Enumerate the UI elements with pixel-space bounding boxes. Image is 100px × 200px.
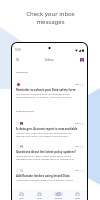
staticText: Mail [19,197,24,200]
staticText: Reminder to submit your Data safety form [16,88,76,92]
other: Select [16,145,19,148]
button[interactable]: Select [12,145,87,160]
button[interactable]: Sep 7 [12,83,87,98]
staticText: Watch our Policy Bytes video series abou… [16,154,72,157]
staticText: Application licensing allows you to add … [16,178,73,181]
staticText: 9:30 [15,48,21,52]
staticText: Data safety form. As a result, users see… [16,95,73,98]
staticText: Is data-gen. Account report is now avail… [16,127,78,131]
button[interactable]: Account [80,58,84,62]
staticText: Inbox [45,58,54,62]
staticText: Questions about the latest policy update… [16,150,76,154]
staticText: Everything else [16,109,34,112]
staticText: Sep 4 [75,145,81,148]
button[interactable]: Chat [30,190,49,200]
staticText: You can now check and view the latest re… [16,131,72,134]
staticText: Our records show you have not submitted … [16,92,70,95]
staticText: Meet [75,197,81,200]
staticText: Important [16,70,29,73]
button[interactable]: Spaces [49,190,68,200]
staticText: Sep 1 [75,169,81,172]
staticText: Spaces [55,197,63,200]
staticText: Check your inbox messages [26,10,75,26]
staticText: Sep 7 [75,83,81,86]
staticText: Add Russian lenders using Install Data [16,174,70,178]
other: Select [16,122,19,125]
button[interactable]: Select [12,122,87,137]
button[interactable]: Select [12,169,87,181]
button[interactable]: Mail [12,190,30,200]
staticText: app version 72345. We review & fix the i… [16,134,69,137]
button[interactable]: Meet [68,190,87,200]
staticText: Chat [37,197,42,200]
staticText: Sep 6 [75,122,81,125]
other: Select [16,169,19,172]
staticText: trending in and more transparency on Goo… [16,157,76,160]
